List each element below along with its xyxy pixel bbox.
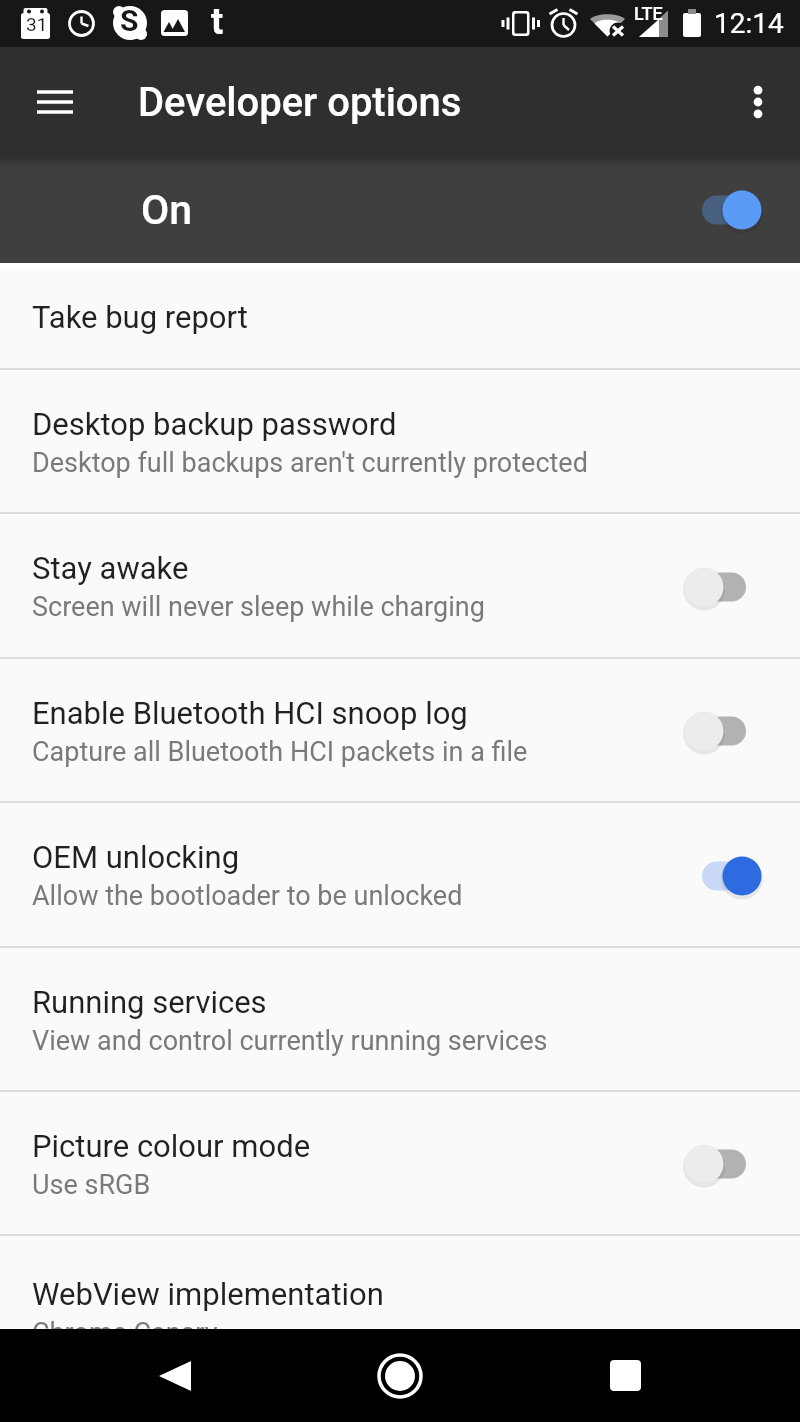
button[interactable]: Picture colour mode (674, 1092, 778, 1236)
staticText: 12:14 (714, 7, 784, 40)
staticText: Desktop full backups aren't currently pr… (32, 447, 588, 479)
staticText: S (120, 3, 139, 38)
staticText: Screen will never sleep while charging (32, 591, 485, 623)
staticText: Running services (32, 984, 267, 1020)
button[interactable]: More options (715, 47, 800, 157)
button[interactable]: OEM unlocking (674, 803, 778, 948)
staticText: Developer options (138, 79, 462, 126)
staticText: Allow the bootloader to be unlocked (32, 880, 463, 912)
staticText: View and control currently running servi… (32, 1025, 548, 1057)
staticText: LTE (634, 3, 663, 24)
staticText: Capture all Bluetooth HCI packets in a f… (32, 736, 528, 768)
staticText: Desktop backup password (32, 406, 397, 442)
button[interactable]: Running services (0, 948, 800, 1092)
staticText: 31 (26, 13, 48, 35)
staticText: WebView implementation (32, 1276, 384, 1312)
staticText: t (211, 1, 224, 43)
button[interactable]: Picture colour mode (0, 1092, 800, 1236)
staticText: Chrome Canary (32, 1317, 218, 1329)
button[interactable]: WebView implementation (0, 1236, 800, 1329)
button[interactable]: Home (340, 1329, 460, 1422)
button[interactable]: Developer options on (674, 157, 778, 263)
staticText: Enable Bluetooth HCI snoop log (32, 695, 468, 731)
button[interactable]: Enable Bluetooth HCI snoop log (674, 659, 778, 803)
button[interactable]: Recents (565, 1329, 685, 1422)
button[interactable]: Back (115, 1329, 235, 1422)
button[interactable]: Stay awake (0, 514, 800, 659)
button[interactable]: OEM unlocking (0, 803, 800, 948)
staticText: OEM unlocking (32, 839, 240, 875)
button[interactable]: Navigation menu (0, 47, 110, 157)
staticText: Take bug report (32, 299, 248, 335)
button[interactable]: Stay awake (674, 514, 778, 659)
staticText: Stay awake (32, 550, 189, 586)
button[interactable]: Desktop backup password (0, 370, 800, 514)
button[interactable]: Take bug report (0, 263, 800, 370)
staticText: Picture colour mode (32, 1128, 311, 1164)
button[interactable]: Enable Bluetooth HCI snoop log (0, 659, 800, 803)
staticText: Use sRGB (32, 1169, 151, 1201)
staticText: On (141, 186, 193, 234)
